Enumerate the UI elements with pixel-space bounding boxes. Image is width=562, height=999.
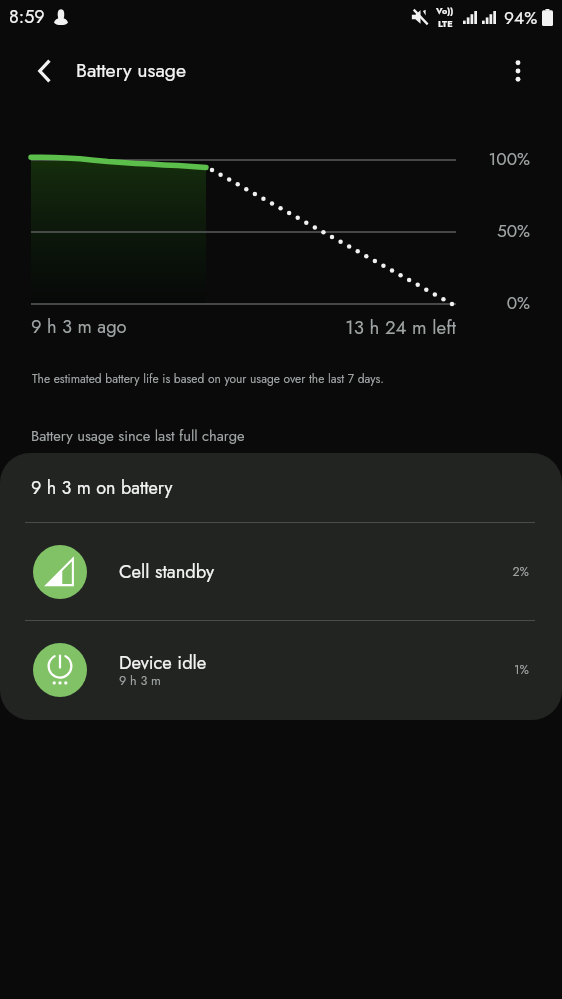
staticText: 94% [504, 5, 538, 30]
staticText: 100% [460, 146, 530, 171]
button[interactable]: Cell standby [0, 523, 562, 620]
button[interactable]: More options [499, 52, 537, 90]
staticText: 8:59 [9, 4, 45, 30]
staticText: 0% [460, 290, 530, 315]
staticText: Battery usage [76, 56, 186, 84]
staticText: 9 h 3 m [119, 672, 161, 690]
button[interactable]: Navigate up [26, 52, 64, 90]
staticText: 9 h 3 m on battery [31, 475, 173, 501]
staticText: 13 h 24 m left [266, 314, 456, 341]
staticText: The estimated battery life is based on y… [32, 370, 384, 387]
staticText: 2% [400, 563, 529, 581]
staticText: Battery usage since last full charge [31, 425, 245, 446]
staticText: 9 h 3 m ago [31, 313, 127, 339]
staticText: 50% [460, 218, 530, 243]
staticText: Vo)) [436, 4, 454, 17]
staticText: LTE [438, 17, 453, 30]
staticText: Device idle [119, 649, 207, 676]
staticText: Cell standby [119, 558, 215, 585]
staticText: 1% [400, 661, 529, 679]
button[interactable]: Device idle [0, 621, 562, 718]
